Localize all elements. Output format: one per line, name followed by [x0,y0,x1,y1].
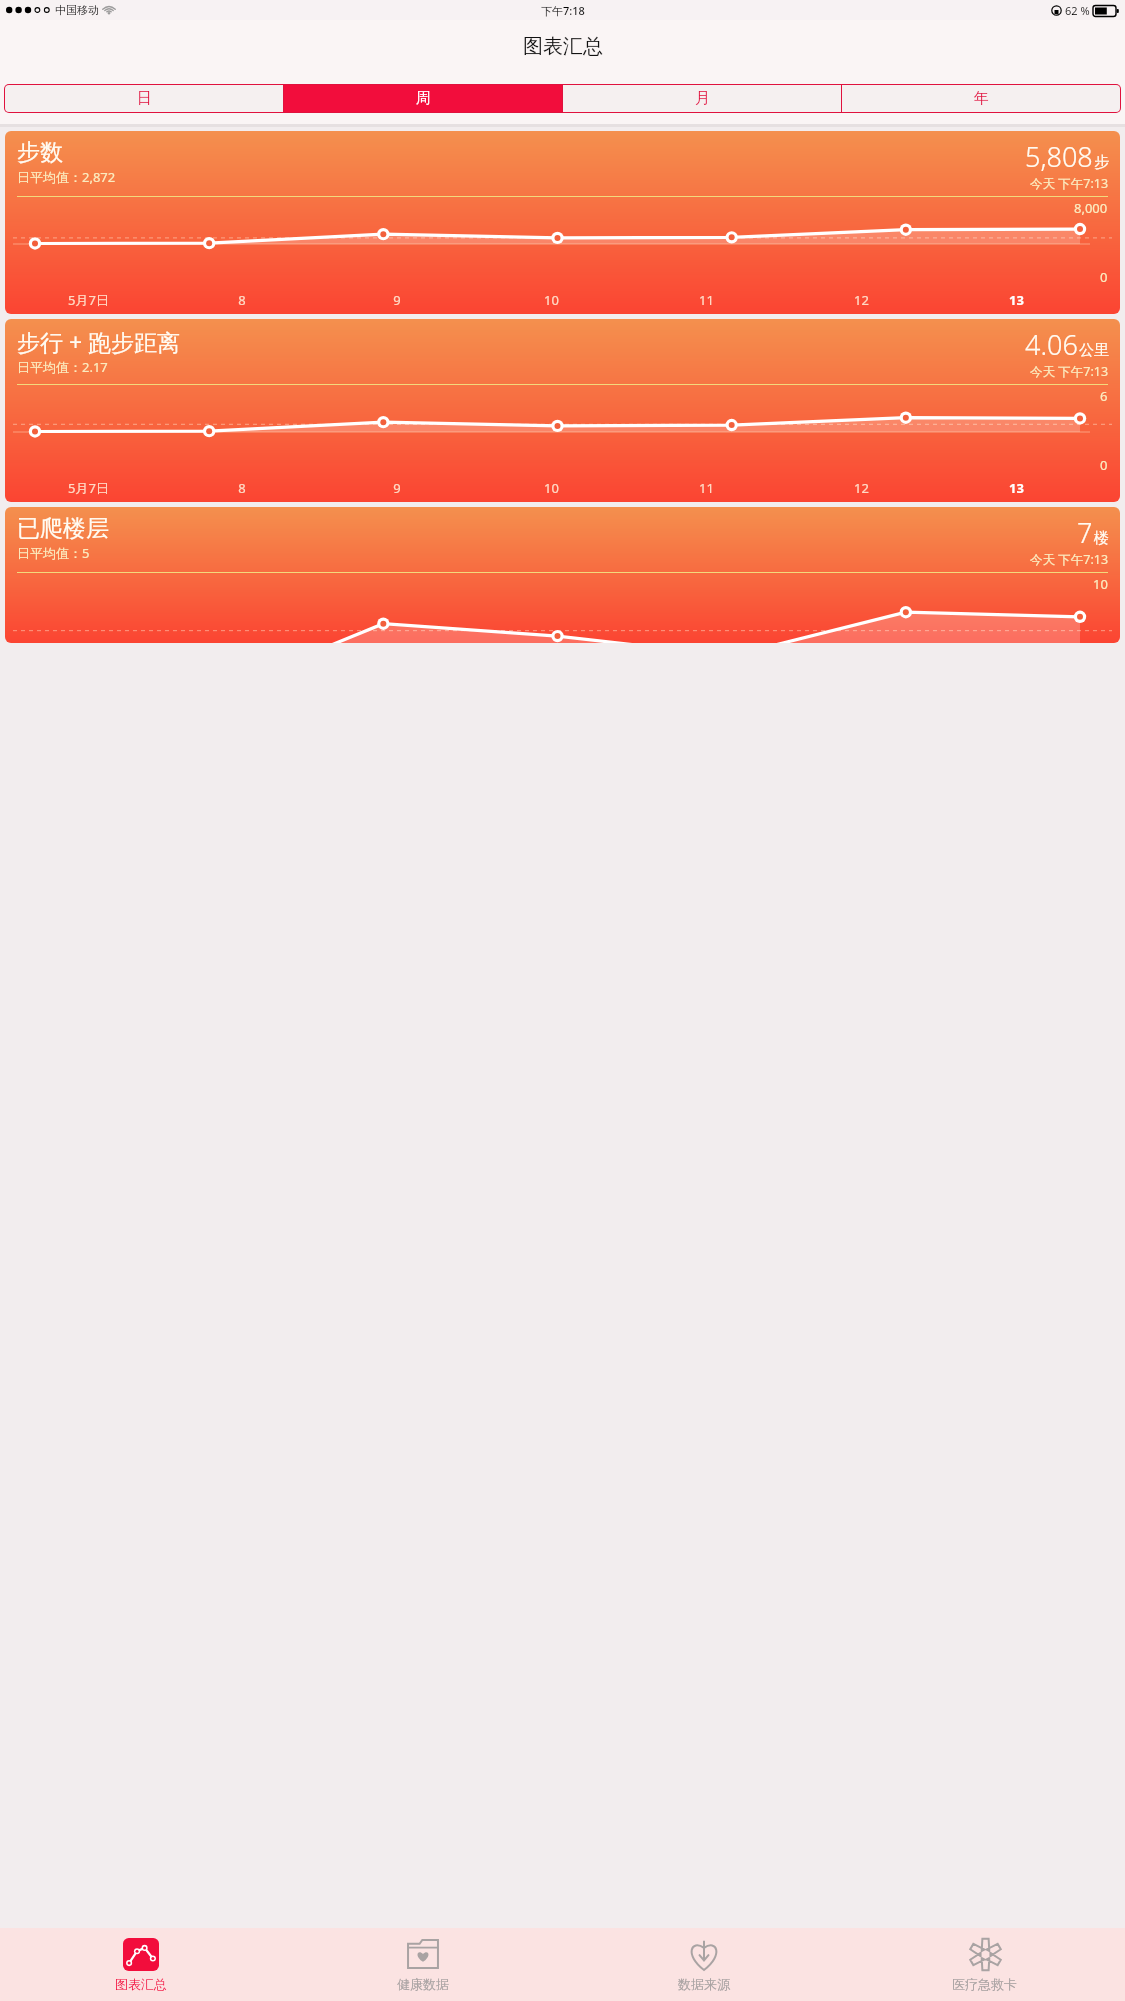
staticText: 0 [1100,456,1108,474]
staticText: 5,808 [1025,138,1093,175]
staticText: 10 [1093,575,1108,593]
staticText: 11 [699,291,714,309]
staticText: 中国移动 [55,3,99,17]
staticText: 已爬楼层 [17,514,109,543]
button[interactable]: 数据来源 [563,1928,844,2001]
staticText: 日平均值：5 [17,544,90,562]
staticText: 月 [695,89,710,108]
other: 图表汇总 [123,1938,159,1971]
staticText: 今天 下午7:13 [1030,363,1109,380]
staticText: 7 [1077,514,1093,551]
staticText: 4.06 [1025,326,1078,363]
staticText: 6 [1100,387,1108,405]
button[interactable]: 步行 + 跑步距离 [5,319,1120,502]
staticText: 健康数据 [397,1976,449,1992]
button[interactable]: 健康数据 [282,1928,563,2001]
staticText: 8 [238,479,246,497]
staticText: 楼 [1094,529,1109,548]
staticText: 9 [393,479,401,497]
staticText: 步 [1094,153,1109,172]
other: 健康数据 [406,1938,440,1970]
other: 医疗急救卡 [969,1938,1002,1971]
staticText: 5月7日 [68,291,109,309]
button[interactable]: 日 [5,85,283,112]
staticText: 8 [238,291,246,309]
button[interactable]: 年 [842,85,1120,112]
staticText: 10 [544,291,559,309]
staticText: 11 [699,479,714,497]
staticText: 13 [1009,291,1024,309]
button[interactable]: 周 [284,85,562,112]
staticText: 今天 下午7:13 [1030,175,1109,192]
staticText: 5月7日 [68,479,109,497]
staticText: 数据来源 [678,1976,730,1992]
staticText: 图表汇总 [523,34,603,59]
staticText: 日平均值：2.17 [17,358,108,376]
button[interactable]: 步数 [5,131,1120,314]
staticText: 日 [137,89,152,108]
staticText: 公里 [1079,341,1109,360]
staticText: 步行 + 跑步距离 [17,326,181,357]
staticText: 年 [974,89,989,108]
button[interactable]: 月 [563,85,841,112]
staticText: 8,000 [1074,199,1108,217]
button[interactable]: 图表汇总 [0,1928,282,2001]
staticText: 62 % [1065,3,1090,18]
staticText: 12 [854,479,869,497]
staticText: 日平均值：2,872 [17,168,116,186]
staticText: 10 [544,479,559,497]
staticText: 下午7:18 [541,3,585,18]
staticText: 9 [393,291,401,309]
staticText: 图表汇总 [115,1976,167,1992]
staticText: 医疗急救卡 [952,1976,1017,1992]
staticText: 周 [416,89,431,108]
button[interactable]: 医疗急救卡 [844,1928,1125,2001]
staticText: 步数 [17,138,63,167]
staticText: 12 [854,291,869,309]
staticText: 0 [1100,268,1108,286]
staticText: 今天 下午7:13 [1030,551,1109,568]
staticText: 13 [1009,479,1024,497]
other: 数据来源 [688,1938,720,1971]
button[interactable]: 已爬楼层 [5,507,1120,643]
